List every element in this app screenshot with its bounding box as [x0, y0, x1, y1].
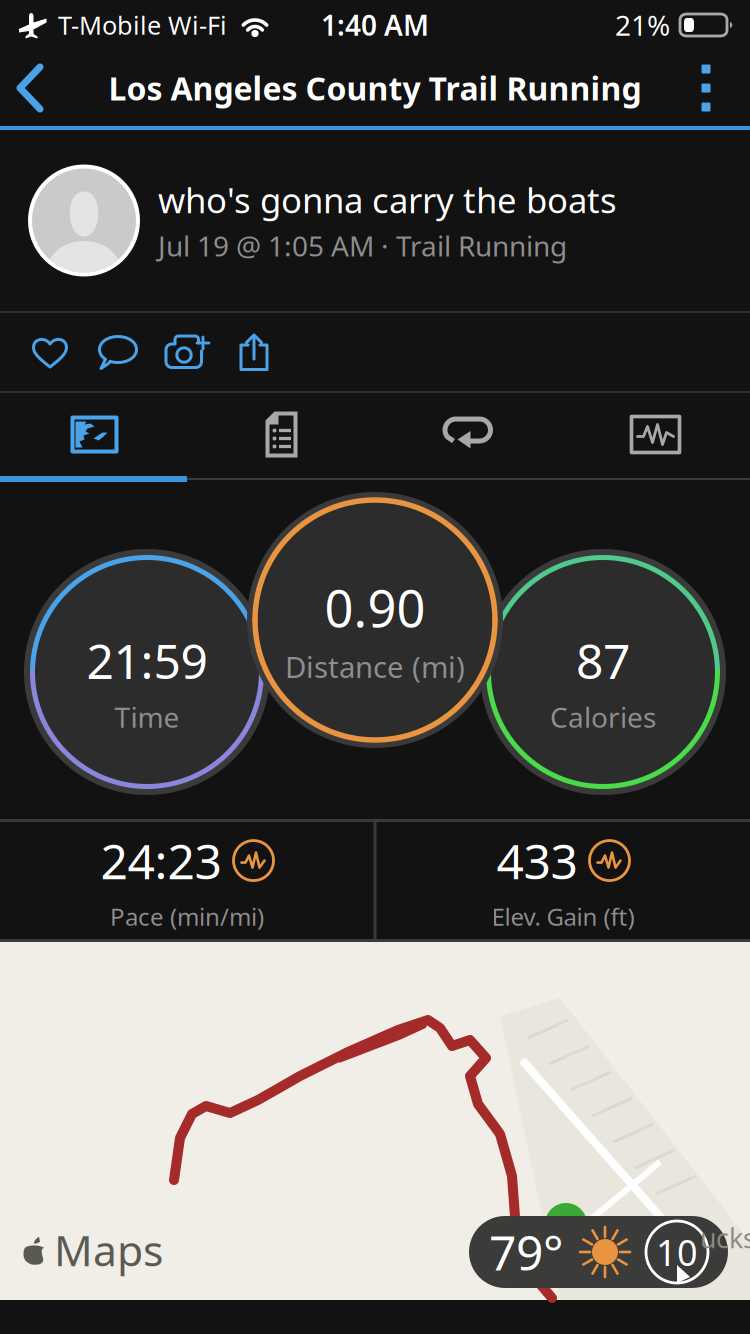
staticText: ucks	[700, 1220, 750, 1256]
button[interactable]: Add photo	[152, 313, 220, 391]
staticText: Calories	[550, 698, 656, 735]
button[interactable]: Map	[1, 393, 188, 476]
staticText: Maps	[54, 1221, 163, 1278]
staticText: 1:40 AM	[321, 6, 429, 44]
staticText: T-Mobile Wi-Fi	[58, 8, 227, 42]
button[interactable]: Like	[16, 313, 84, 391]
staticText: Jul 19 @ 1:05 AM · Trail Running	[158, 227, 567, 264]
button[interactable]: Share	[220, 313, 288, 391]
button[interactable]: Charts	[562, 393, 749, 476]
staticText: 0.90	[324, 574, 425, 641]
button[interactable]: Comment	[84, 313, 152, 391]
staticText: Distance (mi)	[285, 647, 465, 686]
staticText: 79°	[489, 1220, 564, 1284]
staticText: 10	[656, 1228, 698, 1276]
button[interactable]: Back	[0, 50, 62, 126]
staticText: 433	[496, 829, 577, 892]
button[interactable]: Laps	[375, 393, 562, 476]
staticText: 21%	[615, 6, 670, 44]
staticText: Pace (min/mi)	[110, 900, 264, 932]
staticText: Time	[114, 698, 179, 735]
staticText: 24:23	[100, 829, 221, 892]
staticText: Los Angeles County Trail Running	[108, 67, 641, 109]
staticText: who's gonna carry the boats	[158, 177, 617, 223]
staticText: 21:59	[86, 628, 207, 692]
button[interactable]: More options	[662, 50, 750, 126]
button[interactable]: Details	[188, 393, 375, 476]
staticText: 87	[576, 628, 630, 692]
staticText: Elev. Gain (ft)	[491, 900, 634, 932]
